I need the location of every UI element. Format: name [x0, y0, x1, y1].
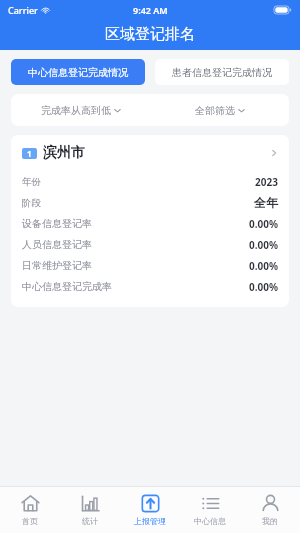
- button[interactable]: 上报管理: [120, 487, 180, 533]
- staticText: 阶段: [22, 197, 41, 209]
- staticText: 2023: [255, 175, 278, 189]
- button[interactable]: 首页: [0, 487, 60, 533]
- staticText: 0.00%: [249, 238, 278, 252]
- staticText: 区域登记排名: [105, 25, 195, 44]
- staticText: 中心信息登记完成率: [22, 280, 112, 293]
- staticText: 0.00%: [249, 280, 278, 294]
- button[interactable]: 我的: [240, 487, 300, 533]
- staticText: 日常维护登记率: [22, 259, 92, 272]
- button[interactable]: 中心信息登记完成情况: [11, 59, 145, 85]
- button[interactable]: 1: [11, 135, 289, 307]
- staticText: 患者信息登记完成情况: [172, 66, 272, 79]
- button[interactable]: 中心信息: [180, 487, 240, 533]
- button[interactable]: 全部筛选: [150, 94, 289, 126]
- staticText: 0.00%: [249, 217, 278, 231]
- staticText: 9:42 AM: [133, 4, 168, 16]
- other: 上报管理: [141, 494, 160, 513]
- staticText: 中心信息登记完成情况: [28, 66, 128, 79]
- staticText: 中心信息: [194, 516, 226, 526]
- staticText: 全部筛选: [195, 104, 235, 117]
- staticText: 我的: [262, 516, 278, 526]
- other: 查看详情: [270, 149, 278, 157]
- staticText: 设备信息登记率: [22, 217, 92, 230]
- staticText: 统计: [82, 516, 98, 526]
- staticText: 年份: [22, 176, 41, 188]
- staticText: 滨州市: [43, 144, 85, 162]
- staticText: Carrier: [8, 4, 38, 16]
- button[interactable]: 患者信息登记完成情况: [155, 59, 289, 85]
- staticText: 0.00%: [249, 259, 278, 273]
- staticText: 人员信息登记率: [22, 238, 92, 251]
- staticText: 全年: [254, 195, 278, 210]
- button[interactable]: 统计: [60, 487, 120, 533]
- staticText: 完成率从高到低: [41, 104, 111, 117]
- staticText: 首页: [22, 516, 38, 526]
- button[interactable]: 完成率从高到低: [11, 94, 150, 126]
- staticText: 1: [27, 148, 32, 159]
- staticText: 上报管理: [134, 516, 166, 526]
